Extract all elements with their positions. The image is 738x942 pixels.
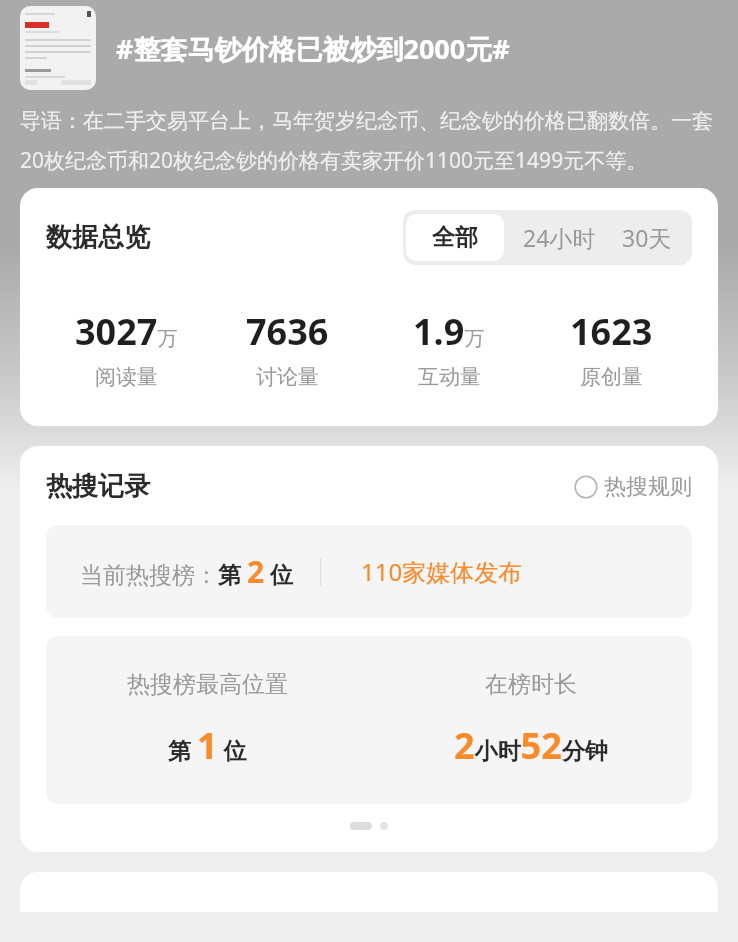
button[interactable]: 当前热搜榜：第 2 位 <box>46 525 692 618</box>
button[interactable]: 1623 <box>530 307 692 390</box>
button[interactable]: 3027万 <box>46 307 207 390</box>
staticText: #整套马钞价格已被炒到2000元# <box>116 30 718 67</box>
staticText: 1.9万 <box>413 307 485 356</box>
staticText: 当前热搜榜：第 2 位 <box>80 551 294 592</box>
button[interactable]: 全部 <box>406 214 504 261</box>
staticText: 1623 <box>570 307 653 356</box>
button[interactable]: 1.9万 <box>368 307 530 390</box>
staticText: 24小时 <box>523 222 596 253</box>
button[interactable]: 30天 <box>612 210 692 265</box>
button[interactable]: 24小时 <box>507 210 612 265</box>
staticText: 导语：在二手交易平台上，马年贺岁纪念币、纪念钞的价格已翻数倍。一套20枚纪念币和… <box>20 108 718 174</box>
staticText: 互动量 <box>418 364 481 390</box>
staticText: 原创量 <box>580 364 643 390</box>
staticText: 阅读量 <box>95 364 158 390</box>
staticText: 全部 <box>432 223 478 252</box>
staticText: 30天 <box>622 222 672 253</box>
staticText: 110家媒体发布 <box>361 555 523 588</box>
staticText: 热搜规则 <box>604 473 692 501</box>
staticText: 7636 <box>246 307 329 356</box>
staticText: 热搜榜最高位置 <box>127 670 288 699</box>
staticText: 讨论量 <box>256 364 319 390</box>
staticText: 数据总览 <box>46 221 150 254</box>
staticText: 2小时52分钟 <box>454 721 608 770</box>
staticText: 3027万 <box>75 307 178 356</box>
staticText: 在榜时长 <box>485 670 577 699</box>
button[interactable]: Post preview <box>20 6 96 90</box>
button[interactable]: 热搜榜最高位置 <box>46 636 692 804</box>
staticText: 第 1 位 <box>168 721 247 770</box>
staticText: 热搜记录 <box>46 470 150 503</box>
button[interactable]: 热搜规则 <box>574 473 692 501</box>
button[interactable]: 7636 <box>207 307 368 390</box>
